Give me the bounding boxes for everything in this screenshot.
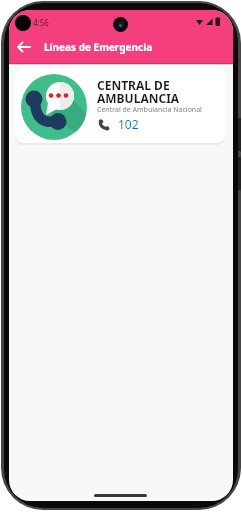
button[interactable] bbox=[9, 32, 39, 62]
staticText: Central de Ambulancia Nacional bbox=[97, 105, 202, 115]
button[interactable]: CENTRAL DE AMBULANCIA bbox=[15, 68, 226, 143]
staticText: 4:56 bbox=[33, 17, 49, 28]
staticText: Líneas de Emergencia bbox=[44, 40, 153, 54]
staticText: 102 bbox=[118, 116, 139, 132]
staticText: CENTRAL DE AMBULANCIA bbox=[97, 77, 180, 107]
button[interactable]: 102 bbox=[99, 116, 139, 132]
